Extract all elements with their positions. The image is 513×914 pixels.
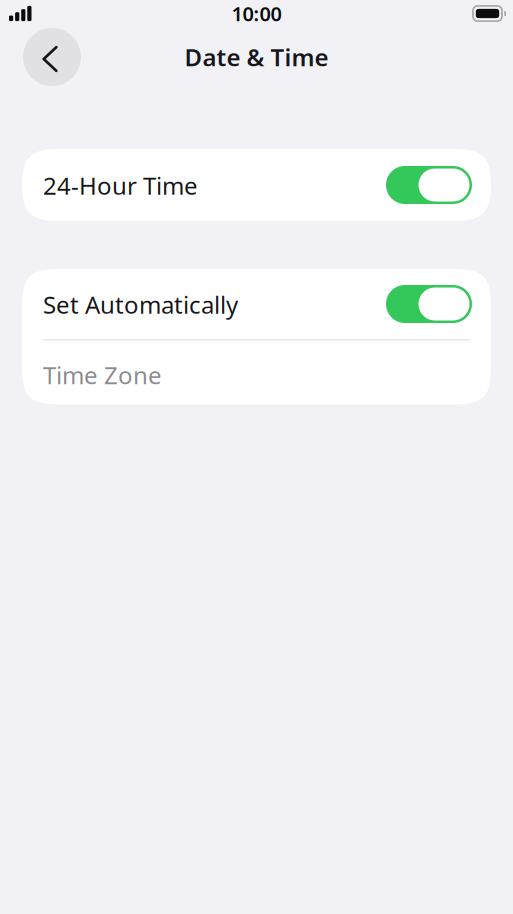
staticText: Date & Time	[184, 41, 328, 73]
button[interactable]: Back	[23, 28, 81, 86]
button[interactable]: Set Automatically	[22, 269, 491, 339]
staticText: Set Automatically	[43, 289, 238, 320]
button[interactable]: 24-Hour Time	[22, 149, 491, 221]
button[interactable]: Time Zone	[22, 340, 491, 404]
staticText: Time Zone	[43, 359, 162, 391]
staticText: 10:00	[231, 0, 281, 27]
staticText: 24-Hour Time	[43, 170, 198, 201]
